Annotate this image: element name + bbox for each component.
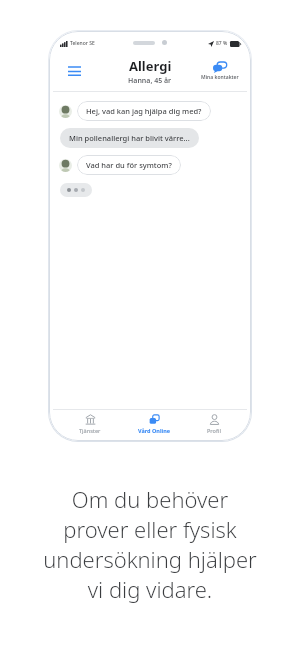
staticText: Tjänster: [79, 427, 101, 434]
staticText: Hanna, 45 år: [128, 76, 172, 86]
button[interactable]: Vad har du för symtom?: [77, 155, 181, 175]
staticText: Om du behöver: [12, 484, 288, 514]
staticText: Profil: [207, 427, 221, 434]
staticText: Allergi: [129, 57, 172, 75]
staticText: Vård Online: [138, 427, 171, 434]
button[interactable]: Menu: [61, 58, 87, 84]
staticText: Telenor SE: [70, 40, 95, 47]
staticText: 87 %: [216, 40, 228, 47]
button[interactable]: Min pollenallergi har blivit värre...: [60, 128, 199, 148]
staticText: Min pollenallergi har blivit värre...: [69, 133, 190, 143]
staticText: Vad har du för symtom?: [86, 160, 172, 170]
button[interactable]: Tjänster: [69, 412, 111, 436]
button[interactable]: Hej, vad kan jag hjälpa dig med?: [77, 101, 211, 121]
button[interactable]: Profil: [197, 412, 231, 436]
button[interactable]: Vård Online: [128, 412, 181, 436]
staticText: prover eller fysisk: [12, 514, 288, 544]
staticText: undersökning hjälper: [12, 544, 288, 574]
button[interactable]: Mina kontakter: [199, 60, 241, 83]
staticText: Mina kontakter: [201, 74, 239, 81]
staticText: vi dig vidare.: [12, 574, 288, 604]
staticText: Hej, vad kan jag hjälpa dig med?: [86, 106, 202, 116]
